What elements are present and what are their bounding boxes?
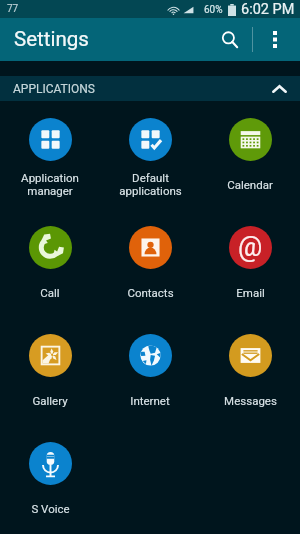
- staticText: Default applications: [119, 171, 182, 197]
- button[interactable]: More options: [253, 18, 297, 61]
- button[interactable]: Internet: [100, 317, 200, 425]
- button[interactable]: S Voice: [0, 425, 100, 533]
- button[interactable]: APPLICATIONS: [0, 76, 300, 101]
- staticText: Application manager: [21, 171, 79, 197]
- button[interactable]: Gallery: [0, 317, 100, 425]
- button[interactable]: Application manager: [0, 101, 100, 209]
- button[interactable]: Calendar: [200, 101, 300, 209]
- staticText: Email: [236, 286, 265, 299]
- staticText: Calendar: [227, 178, 273, 191]
- staticText: @: [238, 231, 263, 263]
- staticText: 60%: [204, 4, 223, 16]
- staticText: Contacts: [127, 286, 174, 299]
- staticText: Messages: [224, 394, 277, 407]
- staticText: Internet: [130, 394, 170, 407]
- staticText: Call: [40, 286, 60, 299]
- button[interactable]: Call: [0, 209, 100, 317]
- staticText: 77: [7, 3, 19, 15]
- button[interactable]: Default applications: [100, 101, 200, 209]
- button[interactable]: Search: [207, 18, 252, 61]
- button[interactable]: Messages: [200, 317, 300, 425]
- staticText: APPLICATIONS: [13, 82, 95, 96]
- button[interactable]: @: [200, 209, 300, 317]
- staticText: Gallery: [32, 394, 68, 407]
- staticText: S Voice: [31, 502, 70, 515]
- button[interactable]: Contacts: [100, 209, 200, 317]
- staticText: 6:02 PM: [241, 1, 295, 18]
- staticText: Settings: [14, 27, 89, 51]
